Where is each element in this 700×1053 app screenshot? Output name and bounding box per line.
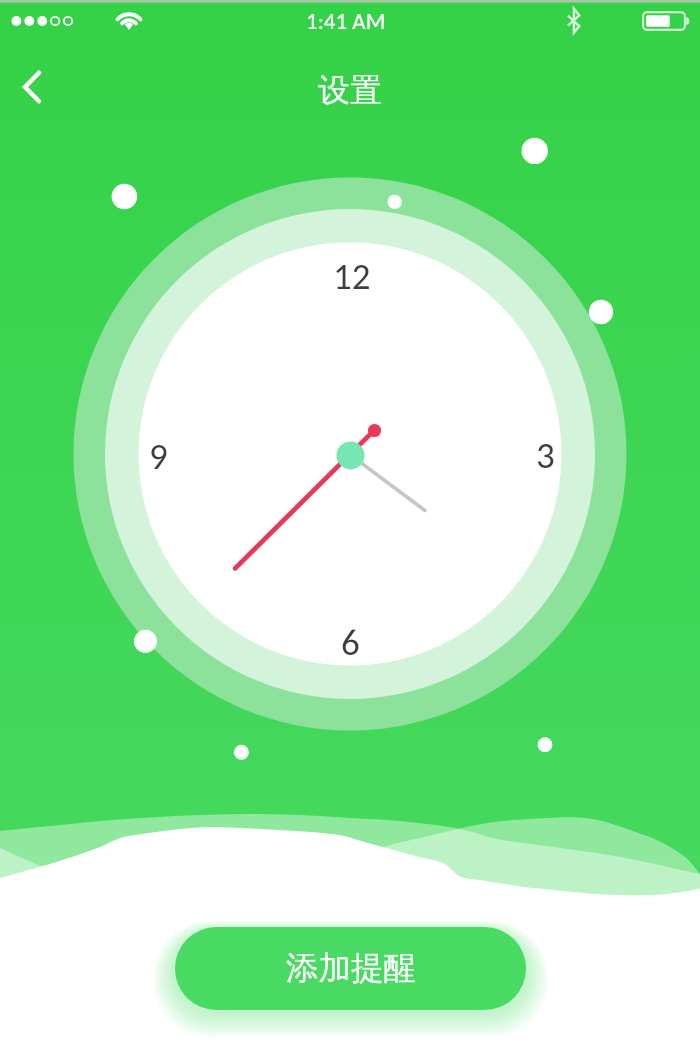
- button[interactable]: 添加提醒: [175, 927, 526, 1010]
- staticText: 添加提醒: [286, 948, 416, 989]
- staticText: 6: [341, 620, 360, 665]
- staticText: 9: [149, 434, 168, 479]
- staticText: 3: [536, 433, 555, 478]
- staticText: 12: [333, 254, 371, 299]
- staticText: 1:41 AM: [306, 7, 386, 35]
- staticText: 设置: [318, 70, 382, 110]
- button[interactable]: Back: [5, 61, 57, 113]
